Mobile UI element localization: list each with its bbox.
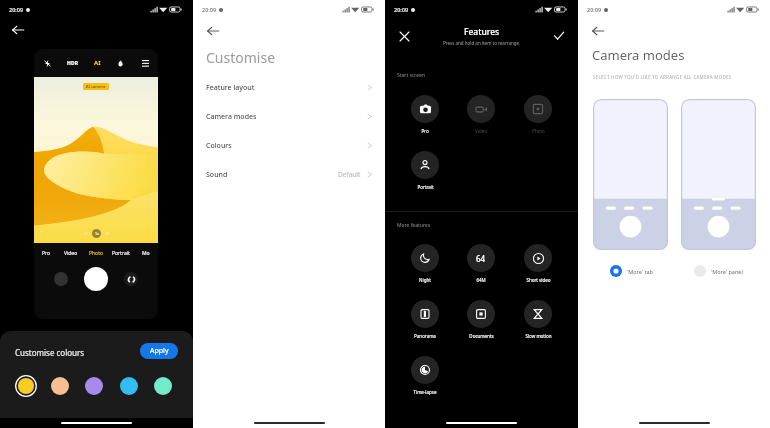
- staticText: 'More' tab: [627, 268, 653, 275]
- staticText: Camera modes: [206, 112, 257, 122]
- button[interactable]: Colours: [193, 131, 385, 160]
- button[interactable]: Confirm: [549, 26, 569, 46]
- button[interactable]: Pro: [34, 250, 58, 257]
- staticText: 20:09: [202, 6, 217, 13]
- button[interactable]: Portrait: [404, 151, 446, 190]
- staticText: Photo: [532, 128, 545, 134]
- staticText: Short video: [526, 277, 551, 283]
- button[interactable]: Pro: [404, 95, 446, 134]
- staticText: HDR: [67, 60, 79, 67]
- staticText: Video: [64, 250, 78, 257]
- button[interactable]: HDR: [66, 59, 80, 68]
- staticText: More features: [397, 222, 431, 229]
- staticText: 64M: [476, 277, 486, 283]
- staticText: Camera modes: [592, 46, 685, 64]
- button[interactable]: Panorama: [404, 300, 446, 339]
- staticText: 1x: [95, 231, 99, 236]
- staticText: Video: [475, 128, 487, 134]
- button[interactable]: Video: [460, 95, 502, 134]
- button[interactable]: Switch camera: [124, 272, 138, 286]
- staticText: Default: [338, 170, 361, 179]
- button[interactable]: Photo: [83, 250, 108, 257]
- button[interactable]: Feature layout: [193, 73, 385, 102]
- staticText: Photo: [89, 250, 103, 257]
- staticText: Feature layout: [206, 83, 255, 93]
- staticText: Mo: [142, 250, 150, 257]
- staticText: 'More' panel: [711, 268, 743, 275]
- staticText: Documents: [469, 333, 494, 339]
- button[interactable]: Filters: [114, 57, 126, 69]
- staticText: Press and hold an item to rearrange: [443, 40, 520, 46]
- button[interactable]: Menu: [139, 57, 151, 69]
- button[interactable]: Sound: [193, 160, 385, 189]
- staticText: 20:09: [394, 6, 409, 13]
- button[interactable]: 64: [460, 244, 502, 283]
- button[interactable]: Close: [394, 26, 414, 46]
- button[interactable]: Flash: [41, 57, 53, 69]
- button[interactable]: Video: [58, 250, 83, 257]
- staticText: Panorama: [414, 333, 436, 339]
- staticText: Portrait: [417, 184, 434, 190]
- button[interactable]: [154, 377, 172, 395]
- button[interactable]: [120, 377, 138, 395]
- button[interactable]: Apply: [140, 343, 178, 359]
- button[interactable]: Time-lapse: [404, 356, 446, 395]
- staticText: Customise: [206, 48, 276, 67]
- button[interactable]: Back: [202, 20, 224, 42]
- staticText: Pro: [42, 250, 51, 257]
- staticText: Portrait: [112, 250, 130, 257]
- button[interactable]: [51, 377, 69, 395]
- staticText: Night: [419, 277, 431, 283]
- button[interactable]: Camera modes: [193, 102, 385, 131]
- button[interactable]: [15, 375, 37, 397]
- button[interactable]: Documents: [460, 300, 502, 339]
- button[interactable]: [85, 377, 103, 395]
- staticText: AI camera: [86, 84, 106, 89]
- staticText: SELECT HOW YOU'D LIKE TO ARRANGE ALL CAM…: [593, 74, 732, 80]
- button[interactable]: Slow motion: [517, 300, 559, 339]
- button[interactable]: Portrait: [108, 250, 133, 257]
- button[interactable]: 'More' panel: [694, 265, 743, 277]
- button[interactable]: Back: [7, 19, 29, 41]
- button[interactable]: Gallery: [54, 272, 68, 286]
- button[interactable]: [593, 99, 668, 250]
- staticText: 20:09: [9, 6, 24, 13]
- staticText: Sound: [206, 170, 228, 180]
- staticText: Colours: [206, 141, 232, 151]
- staticText: Customise colours: [15, 347, 85, 358]
- staticText: 20:09: [587, 6, 602, 13]
- staticText: Time-lapse: [413, 389, 437, 395]
- staticText: Start screen: [397, 72, 426, 79]
- button[interactable]: Mo: [133, 250, 158, 257]
- button[interactable]: Night: [404, 244, 446, 283]
- button[interactable]: [681, 99, 756, 250]
- staticText: Apply: [150, 346, 169, 356]
- staticText: Slow motion: [525, 333, 552, 339]
- staticText: AI: [94, 59, 101, 67]
- button[interactable]: 'More' tab: [610, 265, 653, 277]
- button[interactable]: Photo: [517, 95, 559, 134]
- button[interactable]: AI: [93, 58, 102, 68]
- button[interactable]: Back: [587, 20, 609, 42]
- staticText: 64: [476, 253, 486, 264]
- staticText: Features: [464, 26, 500, 38]
- button[interactable]: Shutter: [84, 267, 108, 291]
- staticText: Pro: [421, 128, 429, 134]
- button[interactable]: Short video: [517, 244, 559, 283]
